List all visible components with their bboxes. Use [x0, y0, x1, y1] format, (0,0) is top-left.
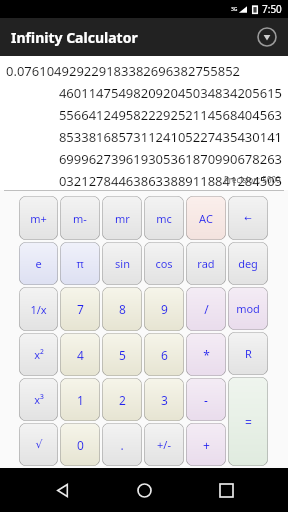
staticText: 6 — [161, 347, 168, 363]
staticText: m- — [73, 211, 87, 226]
staticText: 1/x — [30, 302, 47, 317]
button[interactable]: 7 — [60, 287, 100, 331]
button[interactable]: sin — [102, 242, 142, 285]
staticText: + — [203, 437, 210, 453]
staticText: m+ — [30, 211, 47, 226]
button[interactable]: e — [19, 242, 58, 285]
staticText: * — [203, 347, 210, 363]
button[interactable]: 9 — [144, 287, 184, 331]
staticText: cos — [155, 256, 173, 271]
staticText: 1 — [77, 392, 84, 408]
staticText: mr — [115, 211, 130, 226]
button[interactable]: π — [60, 242, 100, 285]
staticText: 3G — [231, 6, 238, 13]
button[interactable]: +/- — [144, 423, 184, 466]
button[interactable]: x² — [19, 333, 58, 376]
staticText: x³ — [34, 392, 44, 407]
staticText: 4 — [77, 347, 84, 363]
button[interactable]: . — [102, 423, 142, 466]
button[interactable]: = — [228, 377, 268, 466]
button[interactable]: 4 — [60, 333, 100, 376]
staticText: 699962739619305361870990678263 — [6, 150, 282, 168]
staticText: 7:50 — [262, 2, 282, 16]
button[interactable]: 0 — [60, 423, 100, 466]
button[interactable]: More options — [254, 24, 280, 50]
staticText: 853381685731124105227435430141 — [6, 128, 282, 146]
button[interactable]: + — [186, 423, 226, 466]
staticText: R — [245, 346, 252, 361]
staticText: 5 — [119, 347, 126, 363]
staticText: 0 — [77, 437, 84, 453]
staticText: deg — [238, 256, 258, 271]
button[interactable]: R — [228, 332, 268, 375]
button[interactable]: mod — [228, 287, 268, 330]
staticText: = — [245, 414, 252, 430]
staticText: rad — [197, 256, 215, 271]
staticText: / — [204, 301, 209, 317]
button[interactable]: 8 — [102, 287, 142, 331]
staticText: Precision: 5000 — [224, 174, 281, 185]
staticText: - — [204, 392, 208, 408]
staticText: mod — [236, 301, 260, 316]
staticText: 460114754982092045034834205615 — [6, 84, 282, 102]
button[interactable]: x³ — [19, 378, 58, 421]
button[interactable]: rad — [186, 242, 226, 285]
staticText: 2 — [119, 392, 126, 408]
staticText: 556641249582229252114568404563 — [6, 106, 282, 124]
button[interactable]: Home — [124, 470, 164, 510]
staticText: π — [76, 256, 84, 271]
button[interactable]: ← — [228, 196, 268, 240]
button[interactable]: Back — [42, 470, 82, 510]
button[interactable]: deg — [228, 242, 268, 285]
button[interactable]: - — [186, 378, 226, 421]
button[interactable]: 1/x — [19, 287, 58, 331]
staticText: 0.076104929229183382696382755852 — [6, 62, 282, 80]
staticText: AC — [199, 211, 213, 226]
button[interactable]: 6 — [144, 333, 184, 376]
button[interactable]: Recents — [206, 470, 246, 510]
button[interactable]: cos — [144, 242, 184, 285]
button[interactable]: 1 — [60, 378, 100, 421]
staticText: 3 — [161, 392, 168, 408]
staticText: 9 — [161, 301, 168, 317]
staticText: 8 — [119, 301, 126, 317]
button[interactable]: 5 — [102, 333, 142, 376]
staticText: Infinity Calculator — [11, 28, 138, 47]
staticText: √ — [35, 438, 43, 451]
button[interactable]: AC — [186, 196, 226, 240]
button[interactable]: m- — [60, 196, 100, 240]
staticText: +/- — [157, 437, 171, 452]
staticText: . — [120, 437, 124, 453]
staticText: sin — [115, 256, 130, 271]
staticText: mc — [156, 211, 172, 226]
button[interactable]: 2 — [102, 378, 142, 421]
staticText: x² — [34, 347, 44, 362]
button[interactable]: √ — [19, 423, 58, 466]
staticText: 7 — [77, 301, 84, 317]
button[interactable]: * — [186, 333, 226, 376]
button[interactable]: mr — [102, 196, 142, 240]
button[interactable]: m+ — [19, 196, 58, 240]
button[interactable]: / — [186, 287, 226, 331]
staticText: 032127844638633889118841284505 — [6, 172, 282, 190]
staticText: e — [35, 256, 42, 271]
staticText: ← — [244, 213, 252, 223]
button[interactable]: mc — [144, 196, 184, 240]
button[interactable]: 3 — [144, 378, 184, 421]
